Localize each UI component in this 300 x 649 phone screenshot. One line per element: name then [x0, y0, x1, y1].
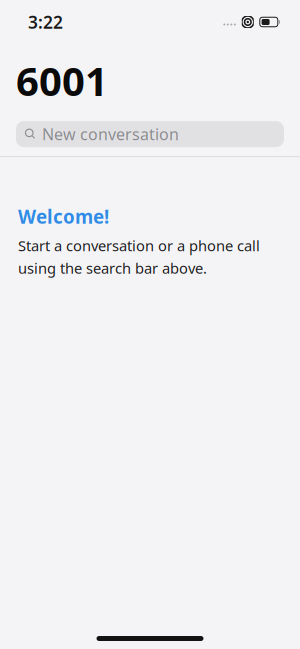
- staticText: Start a conversation or a phone call usi…: [18, 236, 260, 278]
- button[interactable]: New conversation: [16, 121, 284, 147]
- staticText: 3:22: [28, 10, 63, 33]
- staticText: New conversation: [42, 123, 179, 145]
- staticText: 6001: [16, 54, 108, 107]
- staticText: Welcome!: [18, 204, 109, 229]
